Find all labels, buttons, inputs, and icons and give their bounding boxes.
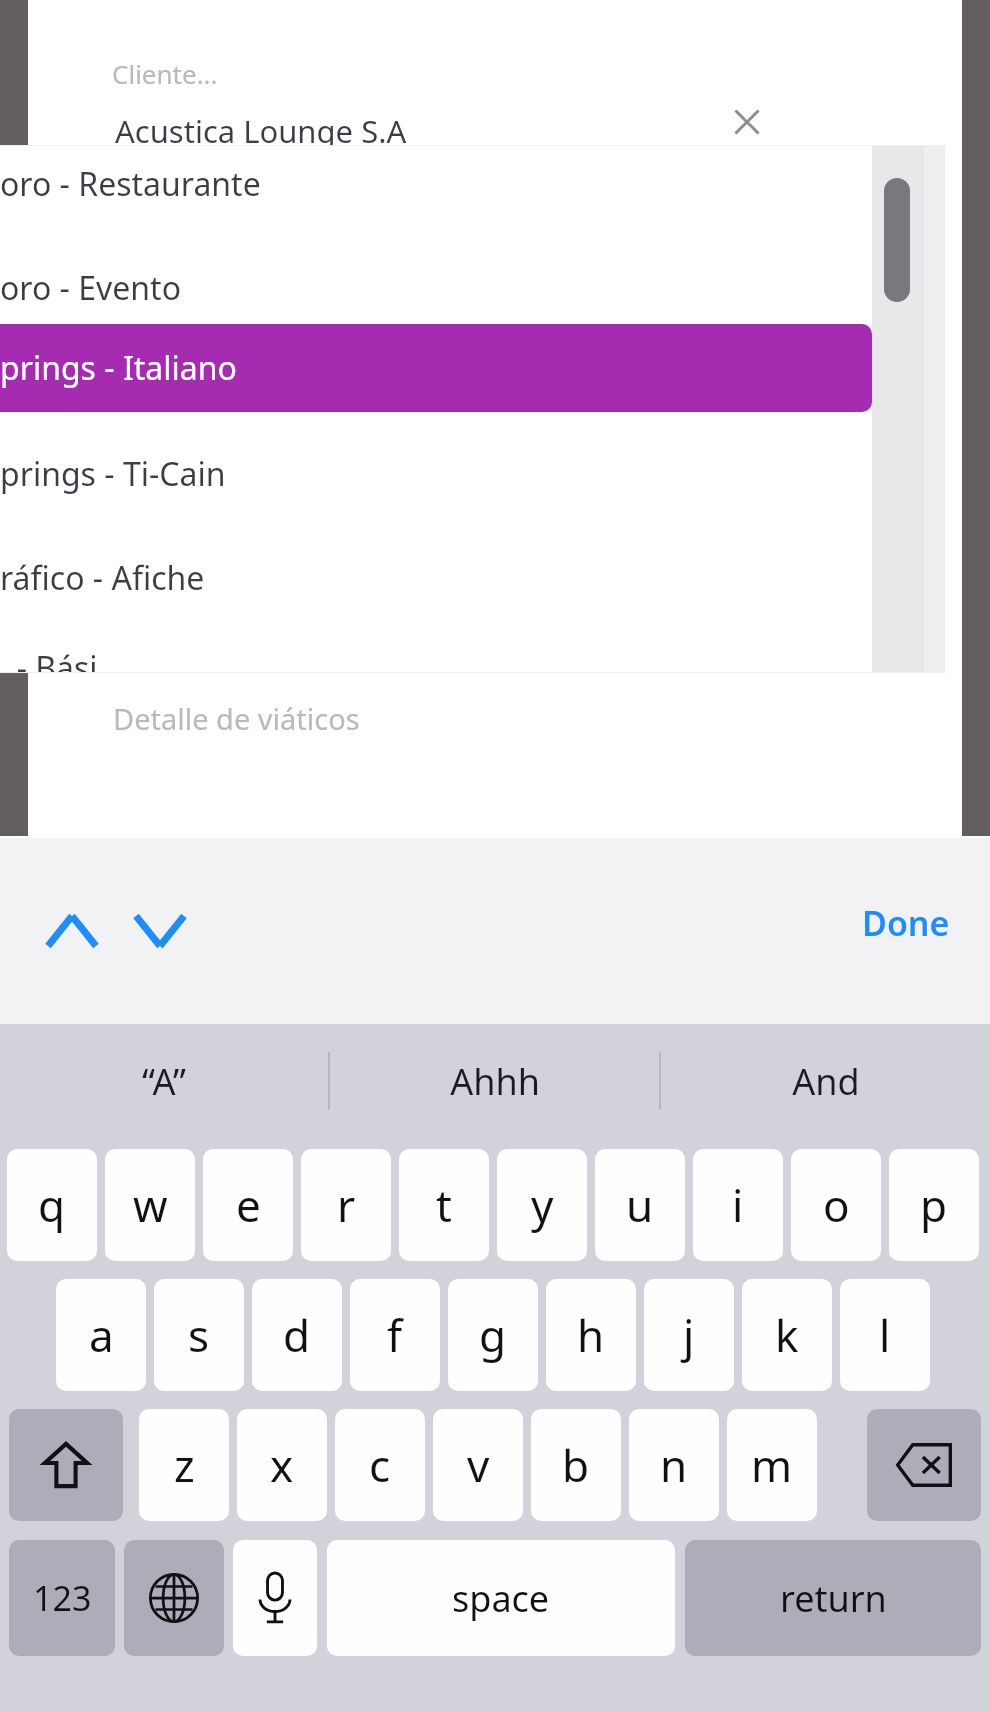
button[interactable]: z	[139, 1409, 229, 1521]
button[interactable]: p	[889, 1149, 979, 1261]
button[interactable]: prings - Italiano	[0, 324, 872, 412]
staticText: space	[452, 1574, 550, 1623]
staticText: v	[467, 1435, 490, 1495]
button[interactable]: Next field	[118, 888, 202, 974]
button[interactable]: f	[350, 1279, 440, 1391]
staticText: Ahhh	[450, 1057, 540, 1106]
staticText: 123	[33, 1575, 92, 1621]
button[interactable]: - Bási	[0, 646, 872, 672]
button[interactable]: b	[531, 1409, 621, 1521]
button[interactable]: And	[661, 1024, 990, 1138]
button[interactable]: d	[252, 1279, 342, 1391]
button[interactable]: return	[685, 1540, 981, 1656]
button[interactable]: k	[742, 1279, 832, 1391]
staticText: g	[479, 1305, 507, 1365]
staticText: r	[337, 1175, 356, 1235]
button[interactable]: c	[335, 1409, 425, 1521]
staticText: u	[626, 1175, 654, 1235]
staticText: z	[174, 1435, 195, 1495]
button[interactable]: 123	[9, 1540, 115, 1656]
button[interactable]: g	[448, 1279, 538, 1391]
staticText: e	[236, 1175, 261, 1235]
staticText: t	[436, 1175, 452, 1235]
button[interactable]: prings - Ti-Cain	[0, 436, 872, 512]
button[interactable]: t	[399, 1149, 489, 1261]
staticText: f	[387, 1305, 403, 1365]
button[interactable]: x	[237, 1409, 327, 1521]
button[interactable]: oro - Restaurante	[0, 146, 872, 222]
staticText: prings - Italiano	[0, 346, 237, 390]
button[interactable]: Done	[848, 890, 964, 956]
staticText: n	[660, 1435, 688, 1495]
staticText: Detalle de viáticos	[113, 699, 360, 738]
staticText: c	[369, 1435, 391, 1495]
button[interactable]: h	[546, 1279, 636, 1391]
button[interactable]: Ahhh	[330, 1024, 659, 1138]
button[interactable]: v	[433, 1409, 523, 1521]
button[interactable]: Shift	[9, 1409, 123, 1521]
staticText: Cliente...	[112, 56, 218, 91]
button[interactable]: i	[693, 1149, 783, 1261]
staticText: y	[531, 1175, 554, 1235]
button[interactable]: space	[327, 1540, 675, 1656]
button[interactable]: e	[203, 1149, 293, 1261]
button[interactable]: y	[497, 1149, 587, 1261]
staticText: o	[823, 1175, 850, 1235]
staticText: “A”	[142, 1057, 186, 1106]
staticText: w	[133, 1175, 168, 1235]
button[interactable]: a	[56, 1279, 146, 1391]
staticText: l	[879, 1305, 891, 1365]
button[interactable]: w	[105, 1149, 195, 1261]
staticText: x	[270, 1435, 294, 1495]
staticText: And	[792, 1057, 860, 1106]
staticText: j	[683, 1305, 695, 1365]
staticText: k	[775, 1305, 799, 1365]
button[interactable]: o	[791, 1149, 881, 1261]
button[interactable]: oro - Evento	[0, 250, 872, 326]
button[interactable]: n	[629, 1409, 719, 1521]
staticText: ráfico - Afiche	[0, 556, 205, 600]
staticText: i	[732, 1175, 744, 1235]
button[interactable]: m	[727, 1409, 817, 1521]
staticText: m	[751, 1435, 793, 1495]
button[interactable]: u	[595, 1149, 685, 1261]
staticText: - Bási	[0, 646, 98, 672]
staticText: s	[188, 1305, 210, 1365]
staticText: d	[283, 1305, 311, 1365]
button[interactable]: j	[644, 1279, 734, 1391]
staticText: oro - Restaurante	[0, 162, 261, 206]
button[interactable]: ráfico - Afiche	[0, 540, 872, 616]
button[interactable]: Change keyboard	[124, 1540, 224, 1656]
staticText: q	[38, 1175, 66, 1235]
button[interactable]: Previous field	[30, 888, 114, 974]
staticText: Done	[862, 900, 950, 946]
staticText: oro - Evento	[0, 266, 182, 310]
staticText: a	[89, 1305, 114, 1365]
button[interactable]: l	[840, 1279, 930, 1391]
button[interactable]: Backspace	[867, 1409, 981, 1521]
staticText: h	[577, 1305, 605, 1365]
staticText: return	[780, 1574, 887, 1623]
button[interactable]: Clear client	[707, 84, 787, 160]
button[interactable]: Dictate	[233, 1540, 317, 1656]
staticText: b	[562, 1435, 590, 1495]
button[interactable]: s	[154, 1279, 244, 1391]
staticText: Acustica Lounge S.A	[115, 110, 407, 152]
button[interactable]: r	[301, 1149, 391, 1261]
staticText: prings - Ti-Cain	[0, 452, 226, 496]
button[interactable]: q	[7, 1149, 97, 1261]
button[interactable]: “A”	[0, 1024, 328, 1138]
staticText: p	[920, 1175, 948, 1235]
